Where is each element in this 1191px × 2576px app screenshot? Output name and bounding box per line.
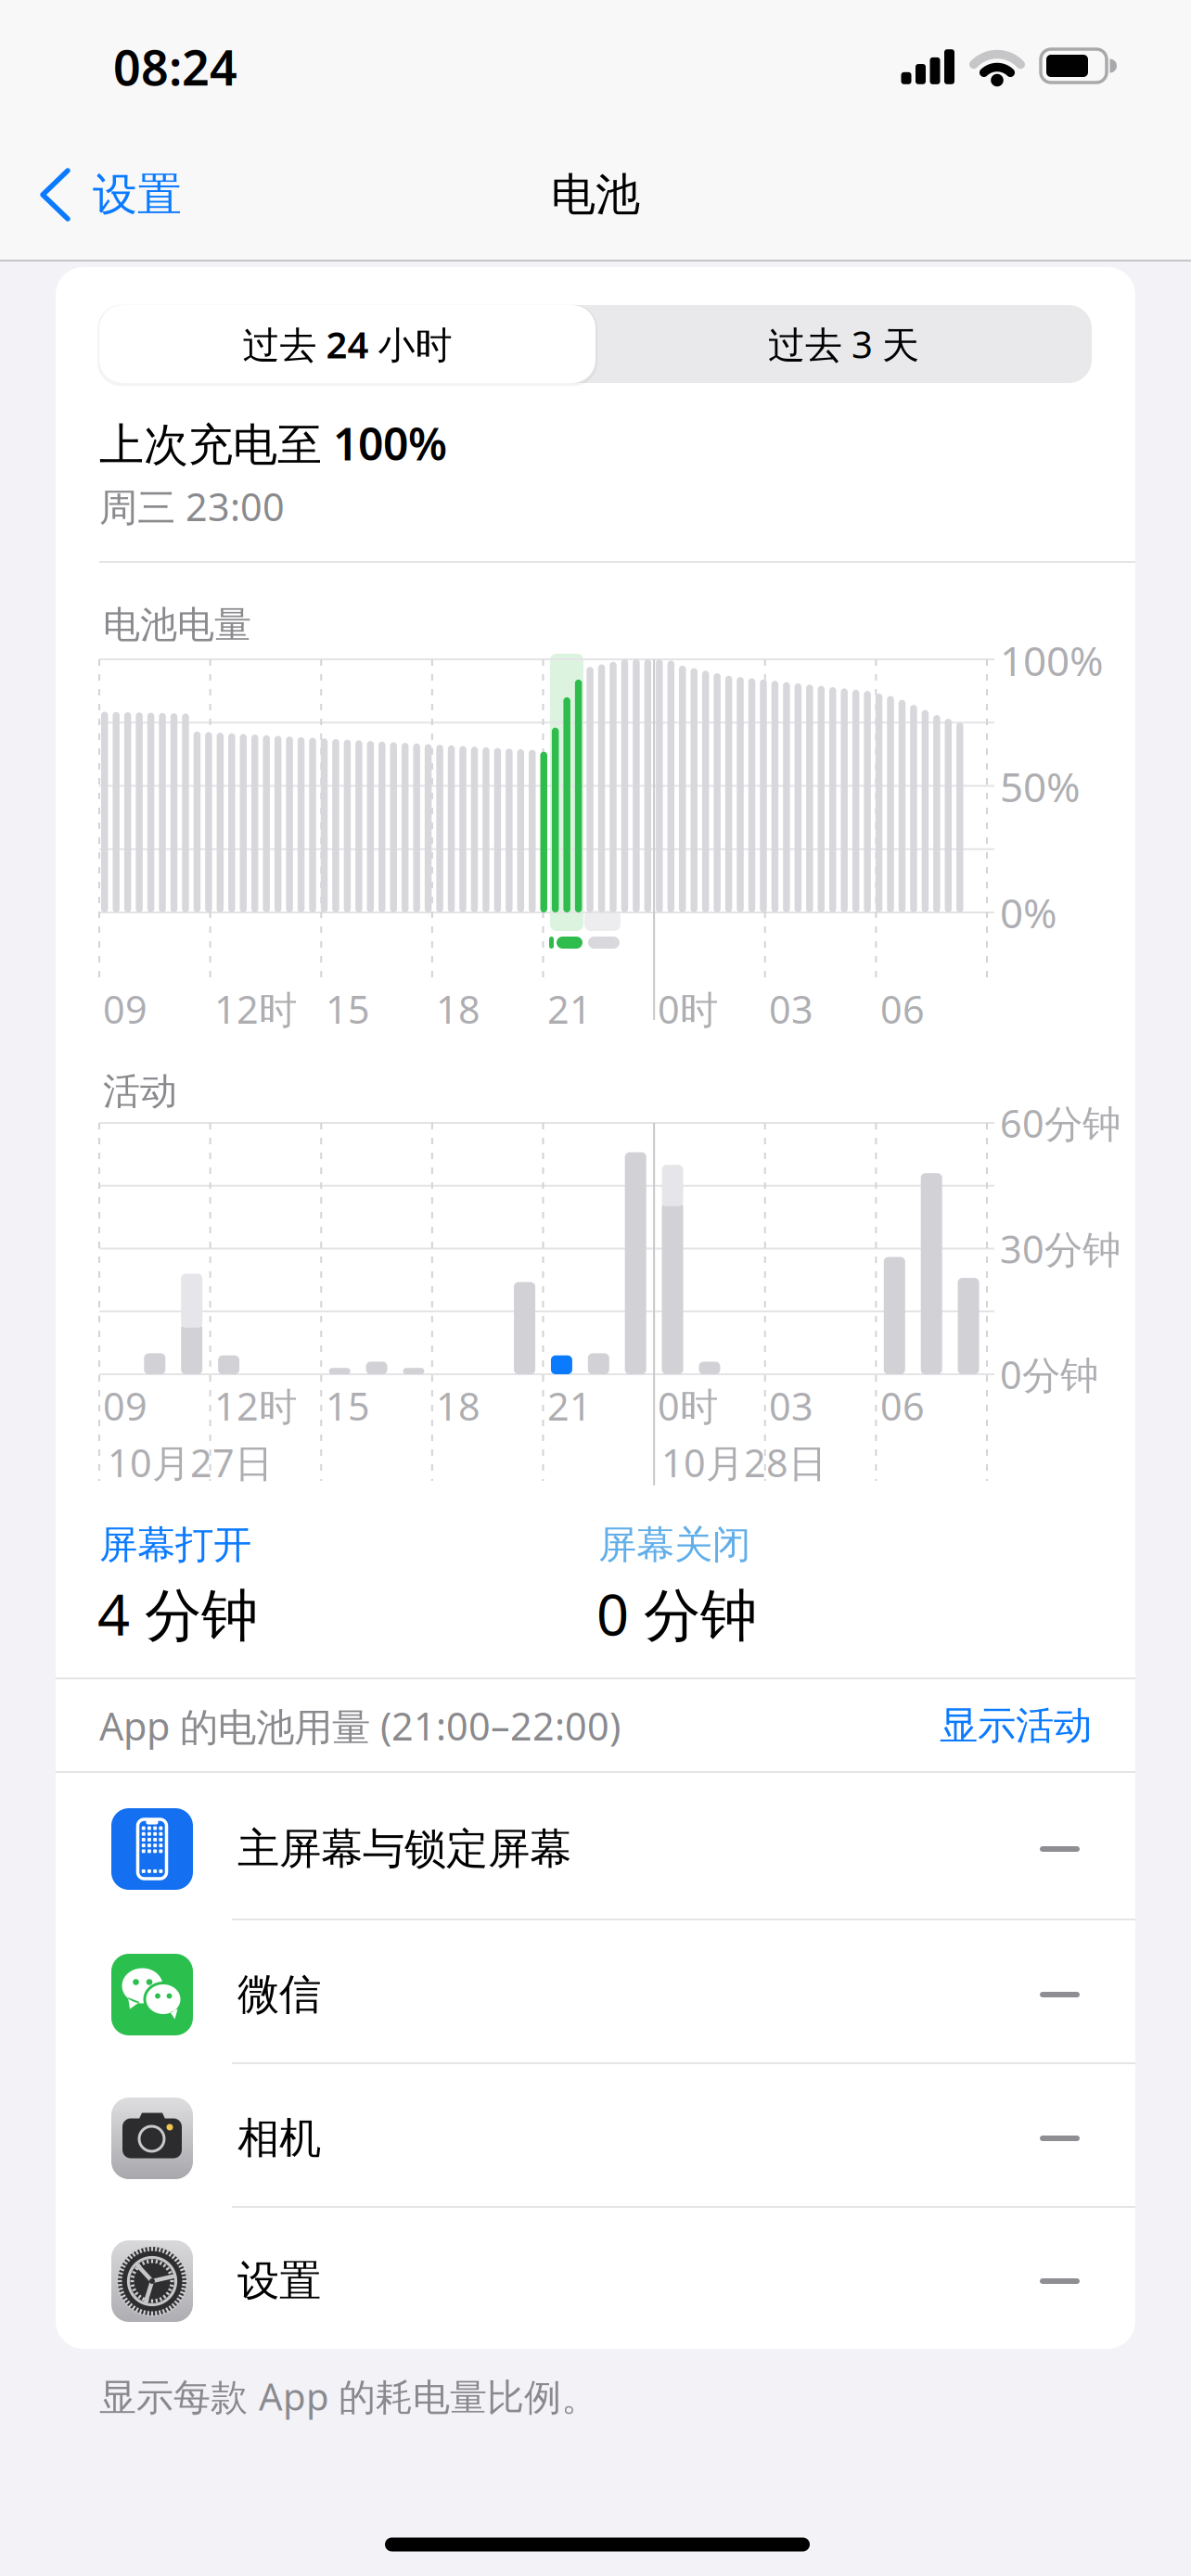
staticText: 主屏幕与锁定屏幕 <box>237 1823 571 1875</box>
staticText: 过去 3 天 <box>768 319 919 369</box>
staticText: 10月28日 <box>661 1437 826 1488</box>
staticText: 电池电量 <box>103 602 251 648</box>
button[interactable] <box>56 1920 1135 2062</box>
staticText: 12时 <box>214 1380 297 1431</box>
staticText: 微信 <box>237 1969 321 2020</box>
staticText: 0 分钟 <box>596 1576 757 1651</box>
staticText: 15 <box>326 1380 370 1431</box>
staticText: 过去 24 小时 <box>243 319 452 369</box>
staticText: 06 <box>880 983 925 1034</box>
staticText: 4 分钟 <box>97 1576 258 1651</box>
staticText: App 的电池用量 (21:00–22:00) <box>99 1700 621 1751</box>
staticText: 上次充电至 100% <box>99 414 447 473</box>
staticText: 12时 <box>214 983 297 1034</box>
staticText: 设置 <box>237 2255 321 2307</box>
staticText: 15 <box>326 983 370 1034</box>
staticText: 100% <box>1000 633 1104 687</box>
staticText: 03 <box>769 1380 813 1431</box>
staticText: 09 <box>103 1380 147 1431</box>
staticText: 活动 <box>103 1069 177 1114</box>
staticText: 屏幕打开 <box>99 1521 251 1568</box>
staticText: 0时 <box>658 983 718 1034</box>
staticText: 06 <box>880 1380 925 1431</box>
staticText: 显示活动 <box>940 1702 1092 1749</box>
button[interactable] <box>28 148 213 241</box>
staticText: 50% <box>1000 759 1081 813</box>
staticText: 08:24 <box>113 35 237 99</box>
staticText: 0分钟 <box>1000 1349 1098 1400</box>
staticText: 屏幕关闭 <box>598 1521 750 1568</box>
button[interactable] <box>56 2064 1135 2206</box>
button[interactable] <box>928 1692 1095 1759</box>
staticText: 周三 23:00 <box>99 481 285 532</box>
staticText: 设置 <box>93 167 182 222</box>
staticText: 60分钟 <box>1000 1098 1121 1148</box>
staticText: 21 <box>547 1380 592 1431</box>
button[interactable] <box>56 2208 1135 2349</box>
staticText: 10月27日 <box>108 1437 273 1488</box>
staticText: 30分钟 <box>1000 1223 1121 1274</box>
staticText: 21 <box>547 983 592 1034</box>
staticText: 09 <box>103 983 147 1034</box>
button[interactable] <box>99 305 595 383</box>
staticText: 显示每款 App 的耗电量比例。 <box>99 2371 598 2421</box>
button[interactable] <box>56 1773 1135 1919</box>
staticText: 0时 <box>658 1380 718 1431</box>
staticText: 0% <box>1000 885 1057 940</box>
staticText: 18 <box>436 983 480 1034</box>
staticText: 18 <box>436 1380 480 1431</box>
staticText: 电池 <box>551 167 640 222</box>
button[interactable] <box>595 305 1092 383</box>
staticText: 03 <box>769 983 813 1034</box>
staticText: 相机 <box>237 2113 321 2164</box>
